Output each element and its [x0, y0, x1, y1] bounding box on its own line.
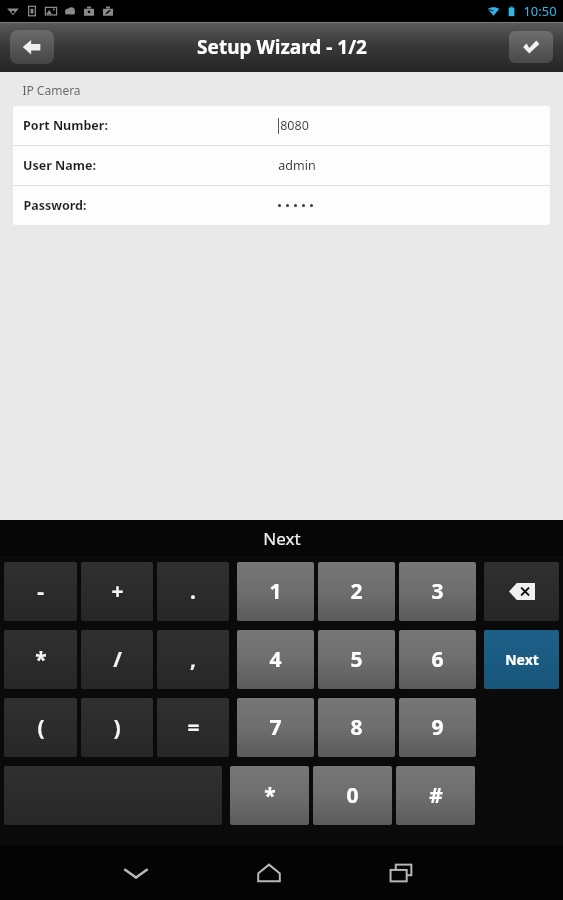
button[interactable]: , — [157, 630, 229, 689]
staticText: . — [190, 577, 196, 606]
staticText: - — [37, 577, 44, 606]
staticText: 5 — [350, 645, 363, 674]
button[interactable]: 0 — [313, 766, 392, 825]
button[interactable]: 3 — [399, 562, 476, 621]
staticText: Setup Wizard - 1/2 — [197, 34, 367, 60]
button[interactable]: 7 — [237, 698, 314, 757]
button[interactable]: Next — [484, 630, 559, 689]
staticText: User Name: — [23, 157, 96, 174]
button[interactable]: * — [230, 766, 309, 825]
button[interactable]: + — [81, 562, 153, 621]
staticText: admin — [278, 157, 316, 174]
staticText: Next — [505, 650, 539, 669]
button[interactable]: Password: — [13, 186, 550, 225]
button[interactable]: . — [157, 562, 229, 621]
button[interactable]: Hide keyboard — [111, 848, 161, 898]
button[interactable]: ) — [81, 698, 153, 757]
staticText: 0 — [346, 781, 359, 810]
staticText: Password: — [23, 197, 87, 214]
staticText: / — [113, 645, 122, 674]
button[interactable]: Home — [244, 848, 294, 898]
staticText: 10:50 — [523, 2, 557, 20]
button[interactable]: Confirm — [509, 31, 553, 63]
staticText: 6 — [431, 645, 444, 674]
button[interactable]: 5 — [318, 630, 395, 689]
staticText: ) — [113, 713, 121, 742]
staticText: 9 — [431, 713, 444, 742]
button[interactable]: 1 — [237, 562, 314, 621]
staticText: ( — [37, 713, 45, 742]
staticText: IP Camera — [22, 82, 81, 98]
button[interactable]: ( — [4, 698, 77, 757]
button[interactable]: # — [396, 766, 475, 825]
staticText: 7 — [269, 713, 282, 742]
staticText: 3 — [431, 577, 444, 606]
staticText: Next — [263, 527, 301, 550]
staticText: 8080 — [280, 117, 309, 134]
button[interactable]: Port Number: — [13, 106, 550, 145]
button[interactable]: * — [4, 630, 77, 689]
button[interactable]: User Name: — [13, 146, 550, 185]
button[interactable]: Back — [10, 30, 54, 64]
button[interactable]: - — [4, 562, 77, 621]
staticText: + — [111, 577, 124, 606]
button[interactable]: 6 — [399, 630, 476, 689]
staticText: * — [35, 645, 47, 674]
button[interactable]: 8 — [318, 698, 395, 757]
staticText: Port Number: — [23, 117, 108, 134]
button[interactable]: 9 — [399, 698, 476, 757]
button[interactable]: 4 — [237, 630, 314, 689]
staticText: 1 — [269, 577, 282, 606]
button[interactable]: Next — [0, 520, 563, 556]
staticText: 2 — [350, 577, 363, 606]
button[interactable]: Recents — [377, 848, 427, 898]
staticText: # — [429, 781, 443, 810]
staticText: * — [264, 781, 276, 810]
staticText: , — [190, 645, 196, 674]
button[interactable]: / — [81, 630, 153, 689]
button[interactable]: Backspace — [484, 562, 559, 621]
button[interactable]: = — [157, 698, 229, 757]
button[interactable]: 2 — [318, 562, 395, 621]
staticText: = — [187, 713, 200, 742]
staticText: 4 — [269, 645, 282, 674]
staticText: 8 — [350, 713, 363, 742]
